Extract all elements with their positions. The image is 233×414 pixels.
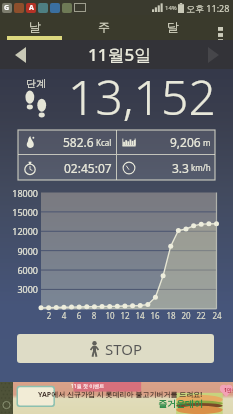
staticText: 오후 11:28: [186, 2, 230, 14]
staticText: 9,206: [170, 134, 201, 150]
staticText: A: [29, 3, 34, 13]
staticText: 24: [207, 310, 227, 321]
staticText: STOP: [105, 339, 143, 359]
staticText: YAP에서 신규가입 시 롯데리아 불고기버거를 드려요!: [38, 390, 203, 400]
staticText: 10: [100, 310, 120, 321]
staticText: 1만원: [224, 387, 233, 394]
button[interactable]: Advertisement: [0, 382, 233, 414]
staticText: 18000: [0, 187, 38, 199]
staticText: 20: [176, 310, 196, 321]
staticText: 주: [98, 19, 110, 34]
staticText: 즐거운데이: [158, 398, 203, 409]
staticText: 12000: [0, 225, 38, 237]
staticText: 18: [161, 310, 181, 321]
button[interactable]: More options: [207, 15, 233, 55]
staticText: 4: [54, 310, 74, 321]
staticText: 2: [39, 310, 59, 321]
staticText: 15000: [0, 206, 38, 218]
staticText: G: [4, 3, 10, 13]
staticText: 12: [115, 310, 135, 321]
staticText: 11월 첫 이벤트: [71, 383, 105, 390]
staticText: 22: [191, 310, 211, 321]
staticText: 02:45:07: [64, 160, 112, 176]
staticText: 6000: [0, 264, 38, 276]
staticText: m: [203, 137, 211, 148]
staticText: 단계: [26, 77, 46, 90]
staticText: 9000: [0, 245, 38, 257]
staticText: 13,152: [68, 64, 216, 129]
button[interactable]: 달: [138, 15, 207, 55]
staticText: 582.6: [63, 134, 94, 150]
staticText: 3.3: [172, 160, 189, 176]
button[interactable]: 주: [69, 15, 138, 55]
staticText: Kcal: [96, 137, 112, 148]
staticText: 16: [145, 310, 165, 321]
staticText: 날: [29, 19, 41, 34]
staticText: 14%: [165, 4, 177, 12]
button[interactable]: STOP: [17, 334, 214, 363]
staticText: km/h: [191, 162, 211, 173]
staticText: 달: [167, 19, 179, 34]
button[interactable]: 날: [0, 15, 69, 55]
staticText: 11월5일: [88, 43, 152, 66]
staticText: 8: [84, 310, 104, 321]
staticText: 6: [69, 310, 89, 321]
button[interactable]: Previous day: [0, 40, 40, 69]
staticText: 14: [130, 310, 150, 321]
staticText: 3000: [0, 283, 38, 295]
button[interactable]: Next day: [193, 40, 233, 69]
